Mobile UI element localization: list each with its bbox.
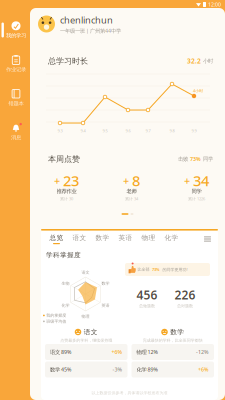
staticText: 物理 (141, 234, 155, 242)
staticText: 9.4 (80, 128, 85, 133)
button[interactable]: 消息 (0, 115, 30, 149)
button[interactable]: 我的学习 (0, 13, 30, 47)
staticText: 点赞最多的学科，继续保持哦 (60, 338, 112, 343)
staticText: 班级平均值 (46, 319, 66, 324)
staticText: 语文 (81, 270, 89, 275)
button[interactable]: 化学 (160, 232, 183, 246)
staticText: 9.3 (57, 128, 62, 133)
staticText: 73% (152, 267, 160, 272)
staticText: 4小时 (193, 88, 203, 93)
staticText: 8 (132, 171, 140, 190)
staticText: 学科掌握度 (46, 251, 81, 259)
staticText: 比全部 (137, 267, 150, 272)
staticText: 化学 (164, 234, 178, 242)
staticText: + (54, 173, 60, 188)
staticText: 我的学习 (6, 32, 26, 39)
staticText: 23 (63, 171, 79, 190)
staticText: 作业记录 (6, 66, 26, 73)
staticText: 数学 (101, 281, 109, 286)
button[interactable]: 错题本 (0, 81, 30, 115)
staticText: 同学 (201, 156, 213, 162)
staticText: 总览 (49, 234, 63, 242)
staticText: 数学 (95, 234, 109, 242)
staticText: +6% (198, 366, 209, 373)
staticText: 32.2 (187, 57, 201, 65)
staticText: 化学 (62, 303, 70, 308)
staticText: 累计 30 (60, 196, 73, 201)
staticText: 老师 (126, 188, 136, 195)
button[interactable]: 更多科目 (200, 232, 215, 246)
staticText: 累计 1226 (188, 196, 205, 201)
button[interactable]: 数学 (91, 232, 114, 246)
staticText: 12:00 (208, 1, 221, 8)
staticText: 物理 12% (136, 348, 157, 356)
staticText: 以上数据仅供参考，具体请以学校发布为准 (91, 390, 167, 395)
staticText: 消息 (11, 134, 21, 141)
staticText: chenlinchun (60, 14, 113, 26)
staticText: 推荐作业 (56, 188, 76, 195)
staticText: 9.9 (191, 128, 196, 133)
staticText: 小时 (201, 58, 213, 64)
staticText: 生物 (62, 281, 70, 286)
staticText: 总对题数 (177, 303, 193, 308)
staticText: 总学习时长 (48, 56, 88, 66)
button[interactable]: 语文 (68, 232, 91, 246)
staticText: 34 (193, 171, 209, 190)
button[interactable]: 物理 (137, 232, 160, 246)
button[interactable]: chenlinchun (30, 8, 225, 40)
staticText: -12% (196, 348, 209, 356)
staticText: 的同学更用功! (161, 267, 187, 272)
staticText: 数学 (170, 328, 184, 336)
staticText: 化学 89% (136, 366, 157, 373)
staticText: 语文 89% (50, 348, 71, 356)
button[interactable]: 英语 (114, 232, 137, 246)
staticText: 9.6 (125, 128, 130, 133)
staticText: 物理 (81, 314, 89, 319)
staticText: 9.5 (102, 128, 107, 133)
staticText: 73% (190, 155, 201, 163)
button[interactable]: 作业记录 (0, 47, 30, 81)
staticText: 总做题数 (139, 303, 155, 308)
staticText: 击败 (178, 156, 190, 162)
staticText: -3% (112, 366, 122, 373)
staticText: + (184, 173, 190, 188)
staticText: 英语 (101, 303, 109, 308)
staticText: 我的掌握度 (46, 313, 66, 318)
staticText: 完成最快的学科，比全班同学都快 (143, 338, 203, 343)
staticText: 456 (136, 287, 157, 303)
staticText: 226 (174, 287, 195, 303)
staticText: 9.7 (145, 128, 150, 133)
staticText: 同学 (191, 188, 201, 195)
staticText: 本周点赞 (48, 154, 80, 164)
staticText: 错题本 (8, 100, 23, 107)
staticText: + (123, 173, 129, 188)
staticText: +6% (111, 348, 122, 356)
staticText: 9.8 (169, 128, 174, 133)
staticText: 累计 34 (125, 196, 138, 201)
button[interactable]: 总览 (45, 232, 68, 246)
staticText: 语文 (72, 234, 86, 242)
staticText: 英语 (118, 234, 132, 242)
staticText: 一年级一班 | 广州第44中学 (60, 27, 121, 34)
staticText: 语文 (84, 328, 98, 336)
staticText: 数学 45% (50, 366, 71, 373)
